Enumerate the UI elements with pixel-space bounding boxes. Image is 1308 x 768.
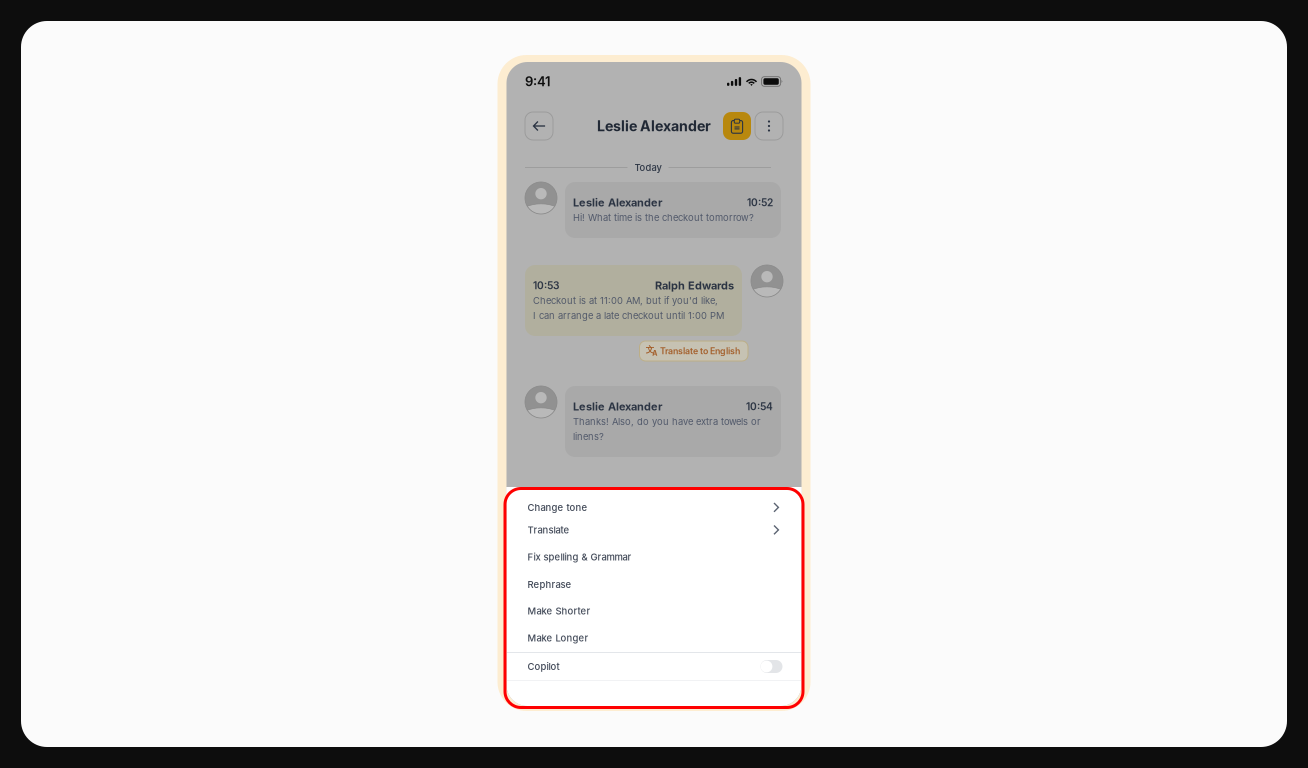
button[interactable]: Make Longer bbox=[506, 624, 801, 652]
staticText: Hi! What time is the checkout tomorrow? bbox=[573, 212, 754, 223]
button[interactable]: Change tone bbox=[506, 498, 801, 517]
staticText: Make Longer bbox=[527, 632, 588, 644]
staticText: Copilot bbox=[527, 661, 559, 672]
staticText: I can arrange a late checkout until 1:00… bbox=[533, 310, 724, 321]
staticText: Rephrase bbox=[527, 579, 571, 590]
staticText: Leslie Alexander bbox=[573, 196, 662, 209]
staticText: linens? bbox=[573, 431, 604, 442]
staticText: 10:54 bbox=[746, 400, 773, 413]
staticText: Make Shorter bbox=[527, 605, 590, 617]
staticText: 10:52 bbox=[747, 196, 773, 209]
staticText: Today bbox=[634, 162, 661, 173]
staticText: Leslie Alexander bbox=[573, 400, 662, 413]
staticText: Translate bbox=[527, 524, 569, 536]
staticText: Ralph Edwards bbox=[655, 279, 734, 292]
staticText: A bbox=[652, 349, 657, 357]
staticText: Fix spelling & Grammar bbox=[527, 551, 631, 563]
staticText: 10:53 bbox=[533, 279, 559, 292]
button[interactable]: Rephrase bbox=[506, 571, 801, 598]
button[interactable]: Back bbox=[525, 112, 553, 140]
staticText: Thanks! Also, do you have extra towels o… bbox=[573, 416, 761, 427]
button[interactable]: Make Shorter bbox=[506, 598, 801, 624]
staticText: Translate to English bbox=[660, 346, 740, 356]
button[interactable]: 文 bbox=[639, 341, 748, 361]
button[interactable]: Copilot bbox=[506, 653, 801, 680]
staticText: 文 bbox=[646, 344, 655, 355]
button[interactable]: More options bbox=[755, 112, 783, 140]
staticText: Checkout is at 11:00 AM, but if you'd li… bbox=[533, 295, 718, 306]
staticText: 9:41 bbox=[525, 74, 551, 89]
button[interactable]: Translate bbox=[506, 517, 801, 543]
button[interactable]: Fix spelling & Grammar bbox=[506, 543, 801, 571]
staticText: Leslie Alexander bbox=[597, 117, 711, 134]
staticText: Change tone bbox=[527, 502, 587, 513]
button[interactable]: Trip notes bbox=[723, 112, 751, 140]
